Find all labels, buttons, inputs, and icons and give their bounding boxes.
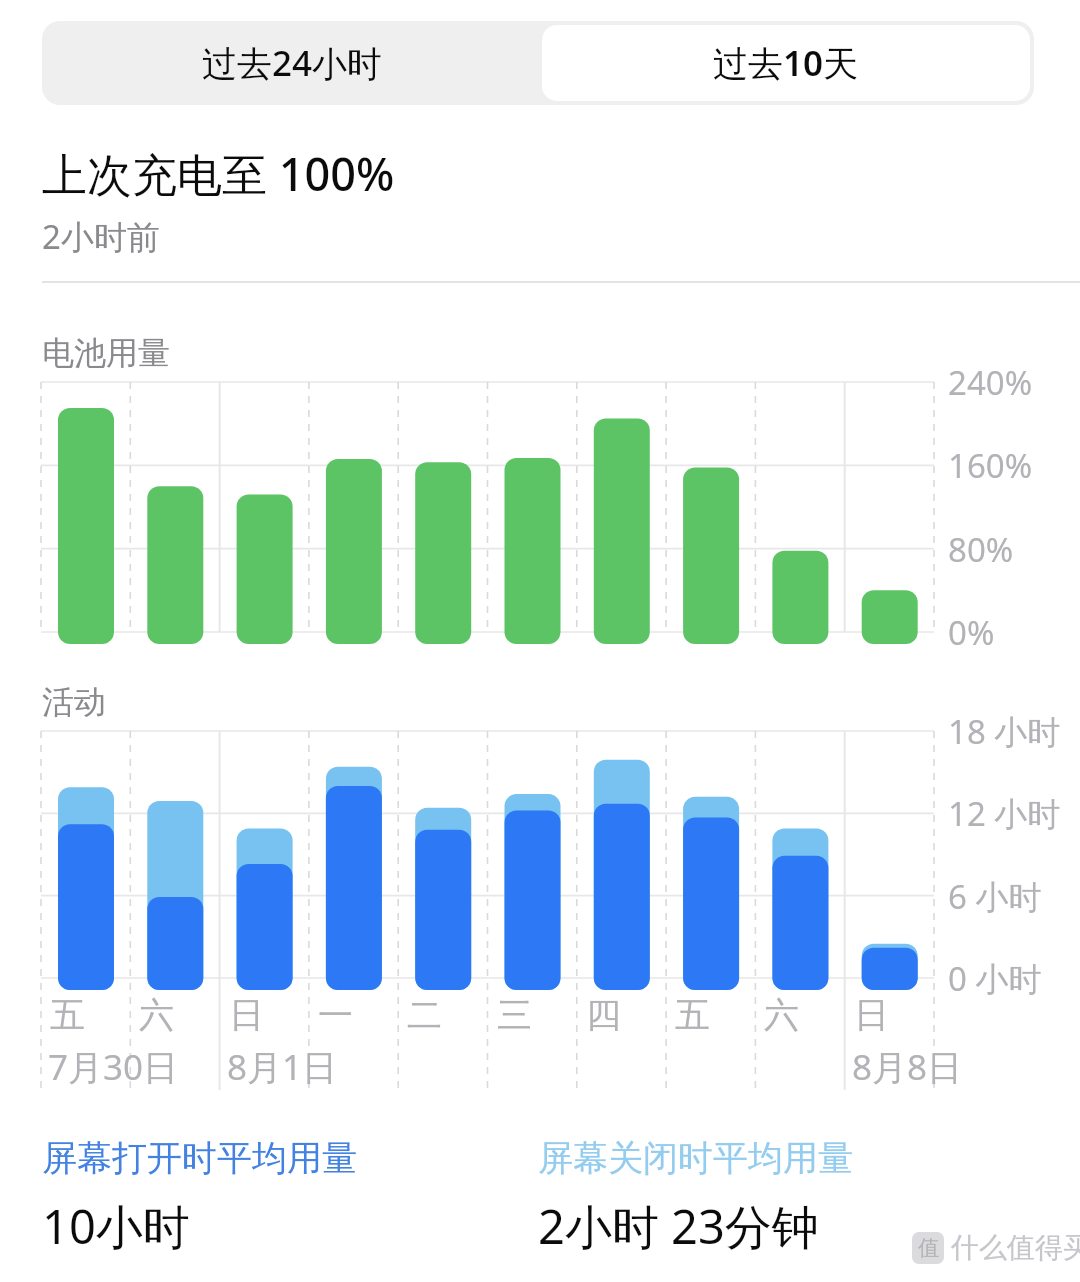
staticText: 四 [586, 993, 621, 1037]
staticText: 日 [854, 993, 889, 1037]
staticText: 屏幕打开时平均用量 [42, 1136, 357, 1180]
staticText: 五 [675, 993, 710, 1037]
button[interactable]: 过去24小时 [42, 21, 542, 105]
staticText: 什么值得买 [951, 1230, 1080, 1265]
staticText: 日 [229, 993, 264, 1037]
staticText: 2小时 23分钟 [538, 1194, 819, 1258]
staticText: 10小时 [42, 1194, 190, 1258]
staticText: 6 小时 [948, 874, 1042, 919]
button[interactable]: 过去10天 [542, 25, 1030, 101]
staticText: 六 [764, 993, 799, 1037]
staticText: 80% [948, 527, 1014, 572]
button[interactable]: 屏幕打开时平均用量 [42, 1136, 357, 1258]
staticText: 一 [318, 993, 353, 1037]
staticText: 160% [948, 443, 1033, 488]
staticText: 8月8日 [852, 1043, 963, 1091]
staticText: 240% [948, 360, 1033, 405]
staticText: 电池用量 [42, 333, 170, 373]
staticText: 12 小时 [948, 791, 1061, 836]
staticText: 五 [50, 993, 85, 1037]
staticText: 六 [139, 993, 174, 1037]
staticText: 0% [948, 610, 995, 655]
staticText: 8月1日 [227, 1043, 338, 1091]
staticText: 三 [497, 993, 532, 1037]
staticText: 活动 [42, 682, 106, 722]
staticText: 过去24小时 [202, 39, 383, 87]
staticText: 0 小时 [948, 956, 1042, 1001]
staticText: 值 [918, 1235, 939, 1261]
staticText: 18 小时 [948, 709, 1061, 754]
other: Watermark [912, 1230, 1080, 1265]
staticText: 7月30日 [48, 1043, 179, 1091]
staticText: 二 [407, 993, 442, 1037]
staticText: 过去10天 [713, 39, 859, 87]
staticText: 2小时前 [42, 214, 160, 259]
button[interactable]: 屏幕关闭时平均用量 [538, 1136, 853, 1258]
staticText: 上次充电至 100% [42, 143, 395, 204]
staticText: 屏幕关闭时平均用量 [538, 1136, 853, 1180]
